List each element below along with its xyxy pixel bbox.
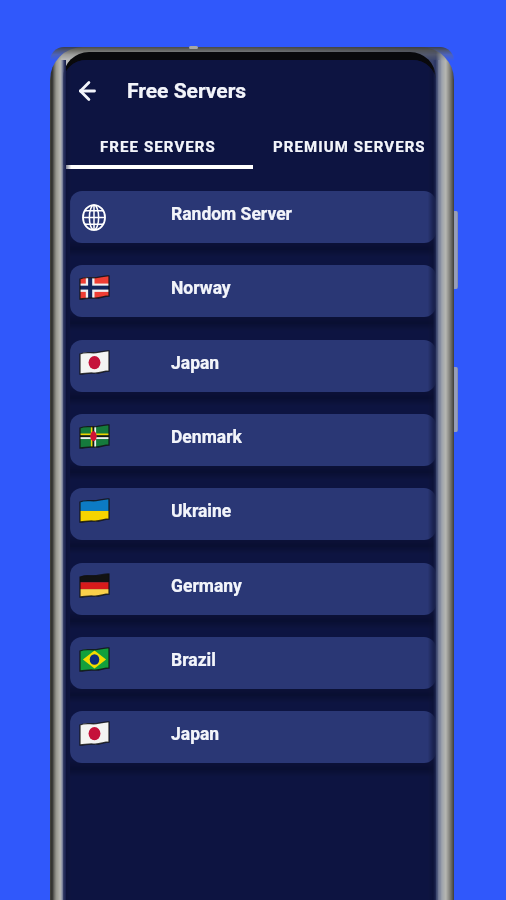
button[interactable]: Germany: [70, 563, 436, 615]
button[interactable]: FREE SERVERS: [63, 130, 253, 164]
staticText: Free Servers: [127, 79, 247, 104]
staticText: Denmark: [171, 427, 242, 448]
button[interactable]: Back: [71, 75, 103, 107]
staticText: PREMIUM SERVERS: [273, 138, 426, 156]
staticText: Random Server: [171, 204, 293, 225]
button[interactable]: Norway: [70, 265, 436, 317]
staticText: Brazil: [171, 650, 216, 671]
button[interactable]: Ukraine: [70, 488, 436, 540]
button[interactable]: Japan: [70, 711, 436, 763]
staticText: Germany: [171, 576, 242, 597]
button[interactable]: Random Server: [70, 191, 436, 243]
staticText: Japan: [171, 724, 220, 745]
staticText: FREE SERVERS: [100, 138, 216, 156]
button[interactable]: Denmark: [70, 414, 436, 466]
button[interactable]: PREMIUM SERVERS: [262, 130, 436, 164]
button[interactable]: Brazil: [70, 637, 436, 689]
staticText: Norway: [171, 278, 231, 299]
staticText: Japan: [171, 353, 220, 374]
staticText: Ukraine: [171, 501, 232, 522]
button[interactable]: Japan: [70, 340, 436, 392]
